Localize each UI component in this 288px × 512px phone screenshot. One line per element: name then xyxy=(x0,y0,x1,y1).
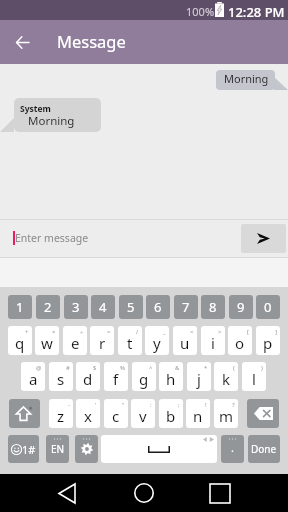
staticText: n xyxy=(193,406,203,426)
button[interactable]: 1 xyxy=(8,295,32,319)
button[interactable]: ; xyxy=(159,399,183,428)
staticText: p xyxy=(263,333,273,353)
button[interactable]: Back xyxy=(47,474,87,512)
button[interactable]: # xyxy=(49,362,73,391)
button[interactable]: Send xyxy=(241,224,286,253)
button[interactable]: * xyxy=(187,362,211,391)
staticText: 100% xyxy=(186,4,215,19)
button[interactable]: Home xyxy=(124,474,164,512)
staticText: z xyxy=(57,406,65,426)
button[interactable]: Done xyxy=(248,435,280,463)
staticText: Morning xyxy=(224,71,269,86)
staticText: 1# xyxy=(22,442,36,457)
staticText: 9 xyxy=(237,298,245,316)
button[interactable]: ÷ xyxy=(63,326,87,355)
button[interactable]: $ xyxy=(76,362,100,391)
staticText: ; xyxy=(178,401,180,409)
button[interactable]: 5 xyxy=(119,295,143,319)
button[interactable]: ( xyxy=(214,362,238,391)
staticText: + xyxy=(25,328,29,336)
staticText: e xyxy=(71,333,80,353)
staticText: 0 xyxy=(264,298,272,316)
button[interactable]: _ xyxy=(145,326,169,355)
button[interactable]: 0 xyxy=(256,295,280,319)
staticText: k xyxy=(222,369,231,389)
staticText: ? xyxy=(232,401,235,409)
staticText: = xyxy=(107,328,111,336)
staticText: 6 xyxy=(154,298,162,316)
button[interactable]: 8 xyxy=(201,295,225,319)
button[interactable]: / xyxy=(118,326,142,355)
button[interactable]: = xyxy=(90,326,114,355)
button[interactable]: ^ xyxy=(132,362,156,391)
staticText: % xyxy=(120,364,125,372)
staticText: ! xyxy=(205,401,207,409)
staticText: ' xyxy=(95,401,97,409)
staticText: v xyxy=(139,406,147,426)
button[interactable]: Shift xyxy=(9,399,40,428)
button[interactable]: Back xyxy=(6,26,38,58)
button[interactable]: & xyxy=(159,362,183,391)
staticText: ^ xyxy=(149,364,153,372)
staticText: s xyxy=(57,369,65,389)
button[interactable]: ! xyxy=(186,399,210,428)
button[interactable]: @ xyxy=(21,362,45,391)
button[interactable]: Recents xyxy=(200,474,240,512)
staticText: r xyxy=(99,333,106,353)
staticText: ) xyxy=(261,364,263,372)
staticText: g xyxy=(139,369,149,389)
staticText: - xyxy=(68,401,70,409)
staticText: @ xyxy=(36,364,42,372)
button[interactable]: 3 xyxy=(64,295,88,319)
button[interactable]: < xyxy=(173,326,197,355)
button[interactable]: Period xyxy=(221,435,244,463)
button[interactable]: 6 xyxy=(146,295,170,319)
button[interactable]: 2 xyxy=(36,295,60,319)
button[interactable]: Symbols xyxy=(8,435,39,463)
button[interactable]: Enter message xyxy=(13,231,89,245)
staticText: a xyxy=(29,369,38,389)
button[interactable]: - xyxy=(49,399,73,428)
button[interactable]: ] xyxy=(256,326,280,355)
staticText: o xyxy=(235,333,245,353)
staticText: < xyxy=(190,328,194,336)
button[interactable]: : xyxy=(131,399,155,428)
staticText: Morning xyxy=(28,113,75,129)
staticText: _ xyxy=(163,328,166,336)
staticText: 5 xyxy=(127,298,135,316)
button[interactable]: + xyxy=(8,326,32,355)
staticText: " xyxy=(122,401,125,409)
staticText: t xyxy=(127,333,133,353)
button[interactable]: ' xyxy=(76,399,100,428)
button[interactable]: " xyxy=(104,399,128,428)
button[interactable]: % xyxy=(104,362,128,391)
staticText: x xyxy=(84,406,92,426)
button[interactable]: Space xyxy=(101,435,217,463)
button[interactable]: [ xyxy=(228,326,252,355)
button[interactable]: Language xyxy=(46,435,69,463)
button[interactable]: ) xyxy=(242,362,266,391)
staticText: j xyxy=(197,369,201,389)
button[interactable]: Backspace xyxy=(247,399,279,428)
button[interactable]: ? xyxy=(214,399,238,428)
staticText: [ xyxy=(247,328,249,336)
button[interactable]: × xyxy=(35,326,59,355)
button[interactable]: > xyxy=(201,326,225,355)
staticText: q xyxy=(15,333,25,353)
staticText: 2 xyxy=(44,298,52,316)
staticText: c xyxy=(112,406,120,426)
staticText: l xyxy=(252,369,256,389)
staticText: w xyxy=(41,333,53,353)
staticText: Enter message xyxy=(15,231,89,245)
button[interactable]: 4 xyxy=(91,295,115,319)
staticText: 7 xyxy=(182,298,190,316)
staticText: d xyxy=(83,369,93,389)
button[interactable]: 9 xyxy=(229,295,253,319)
staticText: 1 xyxy=(16,298,24,316)
staticText: × xyxy=(52,328,56,336)
button[interactable]: 7 xyxy=(174,295,198,319)
button[interactable]: Settings xyxy=(75,435,98,463)
staticText: & xyxy=(175,364,180,372)
staticText: f xyxy=(113,369,119,389)
staticText: ÷ xyxy=(80,328,84,336)
